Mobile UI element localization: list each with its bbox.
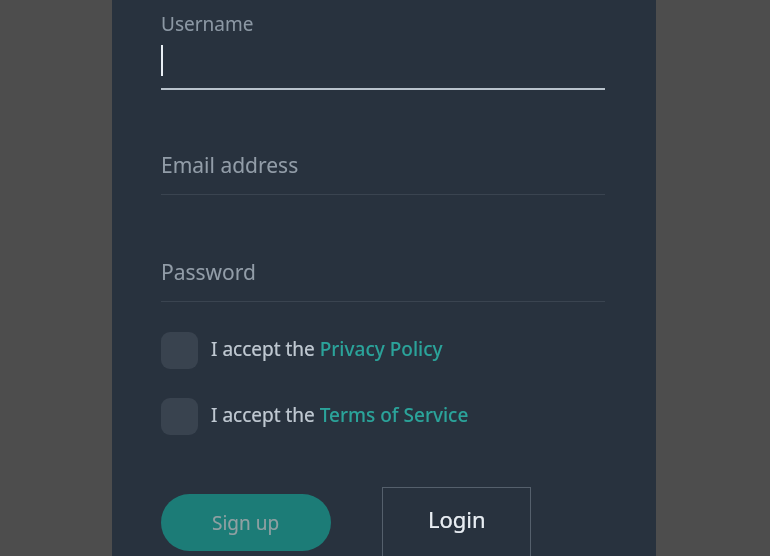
button[interactable]: I accept the Terms of Service xyxy=(161,396,469,436)
staticText: Login xyxy=(428,504,486,534)
staticText: I accept the Privacy Policy xyxy=(211,336,443,362)
staticText: Password xyxy=(161,258,256,287)
button[interactable]: Sign up xyxy=(161,494,331,551)
button[interactable]: Login xyxy=(382,487,531,556)
button[interactable]: Password xyxy=(161,255,605,302)
button[interactable]: Email address xyxy=(161,148,605,195)
staticText: Email address xyxy=(161,151,299,180)
button[interactable]: I accept the Privacy Policy xyxy=(161,330,443,370)
staticText: Username xyxy=(161,11,254,37)
staticText: I accept the Terms of Service xyxy=(211,402,469,428)
button[interactable] xyxy=(161,38,605,90)
staticText: Sign up xyxy=(212,510,280,536)
